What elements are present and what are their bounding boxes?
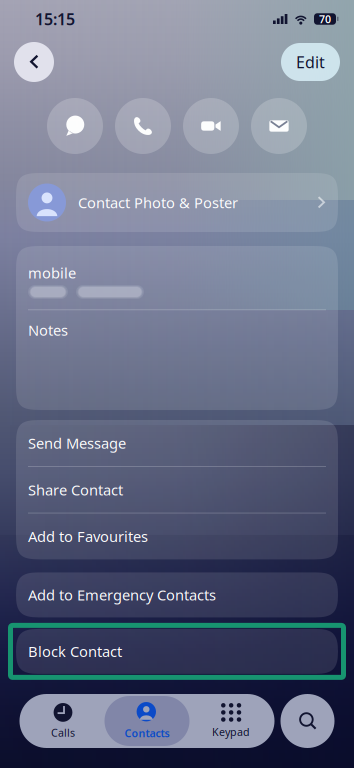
button[interactable]: Back	[14, 42, 54, 82]
button[interactable]: Add to Emergency Contacts	[16, 572, 338, 617]
staticText: mobile	[28, 263, 76, 282]
button[interactable]: Contact Photo & Poster	[16, 173, 338, 232]
staticText: Block Contact	[28, 642, 122, 661]
staticText: 70	[319, 12, 331, 26]
button[interactable]: Mail	[251, 98, 307, 154]
staticText: Edit	[296, 51, 325, 73]
staticText: Contacts	[124, 726, 169, 740]
staticText: Send Message	[28, 433, 126, 453]
button[interactable]: FaceTime	[183, 98, 239, 154]
button[interactable]: Keypad	[189, 696, 272, 746]
staticText: Notes	[28, 320, 68, 340]
staticText: Share Contact	[28, 480, 123, 499]
button[interactable]: Search	[280, 694, 334, 748]
button[interactable]: Call	[115, 98, 171, 154]
button[interactable]: Contacts	[104, 696, 189, 746]
button[interactable]: Block Contact	[16, 629, 338, 674]
staticText: 15:15	[35, 8, 75, 30]
button[interactable]: Notes	[16, 310, 338, 350]
button[interactable]: Send Message	[16, 420, 338, 466]
staticText: Add to Favourites	[28, 527, 148, 546]
button[interactable]: Message	[47, 98, 103, 154]
staticText: Calls	[51, 725, 75, 740]
button[interactable]: Add to Favourites	[16, 513, 338, 559]
staticText: Contact Photo & Poster	[78, 193, 238, 212]
staticText: Keypad	[212, 725, 250, 739]
button[interactable]: Edit	[281, 43, 340, 81]
button[interactable]: Share Contact	[16, 467, 338, 513]
staticText: Add to Emergency Contacts	[28, 585, 216, 605]
button[interactable]: Calls	[21, 696, 104, 746]
